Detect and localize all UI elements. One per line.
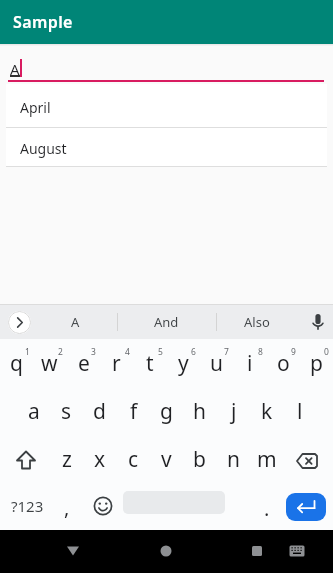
button[interactable] xyxy=(285,439,329,483)
button[interactable] xyxy=(8,311,31,334)
button[interactable]: August xyxy=(6,128,327,167)
staticText: f xyxy=(130,397,138,426)
staticText: Sample xyxy=(13,11,73,33)
staticText: m xyxy=(257,445,277,474)
staticText: 5 xyxy=(158,346,163,358)
button[interactable] xyxy=(146,531,186,571)
staticText: a xyxy=(28,397,40,426)
button[interactable]: And xyxy=(126,307,206,337)
button[interactable]: y xyxy=(167,341,200,385)
staticText: 2 xyxy=(58,346,63,358)
staticText: u xyxy=(210,349,223,378)
button[interactable]: b xyxy=(183,437,216,481)
staticText: d xyxy=(93,397,106,426)
button[interactable]: Also xyxy=(222,307,292,337)
staticText: n xyxy=(227,445,240,474)
staticText: 8 xyxy=(258,346,263,358)
button[interactable]: j xyxy=(217,389,250,433)
staticText: k xyxy=(261,397,273,426)
button[interactable]: l xyxy=(283,389,316,433)
staticText: r xyxy=(112,349,121,378)
button[interactable]: x xyxy=(83,437,116,481)
staticText: z xyxy=(62,445,72,474)
staticText: , xyxy=(64,494,70,521)
staticText: August xyxy=(20,139,67,158)
button[interactable]: s xyxy=(50,389,83,433)
staticText: 1 xyxy=(25,346,30,358)
button[interactable]: Sample xyxy=(0,0,333,44)
button[interactable]: e xyxy=(67,341,100,385)
button[interactable] xyxy=(280,531,314,571)
button[interactable]: v xyxy=(150,437,183,481)
staticText: A xyxy=(10,59,20,79)
staticText: h xyxy=(193,397,206,426)
button[interactable] xyxy=(4,438,48,482)
button[interactable]: A xyxy=(40,307,110,337)
button[interactable]: n xyxy=(217,437,250,481)
staticText: b xyxy=(193,445,206,474)
staticText: l xyxy=(297,397,303,426)
staticText: 3 xyxy=(91,346,96,358)
staticText: w xyxy=(41,349,58,378)
staticText: j xyxy=(231,397,237,426)
button[interactable] xyxy=(83,486,123,526)
staticText: ?123 xyxy=(11,496,44,516)
staticText: . xyxy=(264,495,270,522)
staticText: i xyxy=(247,349,253,378)
button[interactable]: u xyxy=(200,341,233,385)
button[interactable]: o xyxy=(267,341,300,385)
staticText: x xyxy=(94,445,106,474)
button[interactable]: z xyxy=(50,437,83,481)
button[interactable] xyxy=(305,307,331,337)
button[interactable]: a xyxy=(17,389,50,433)
staticText: 6 xyxy=(191,346,196,358)
button[interactable]: t xyxy=(133,341,166,385)
button[interactable]: ?123 xyxy=(3,486,51,526)
staticText: 9 xyxy=(291,346,296,358)
button[interactable]: h xyxy=(183,389,216,433)
staticText: e xyxy=(78,349,90,378)
staticText: g xyxy=(160,397,173,426)
button[interactable]: q xyxy=(0,341,33,385)
button[interactable] xyxy=(286,493,326,521)
staticText: 7 xyxy=(224,346,229,358)
button[interactable]: i xyxy=(233,341,266,385)
button[interactable]: , xyxy=(50,485,83,529)
staticText: Also xyxy=(244,313,270,331)
staticText: A xyxy=(71,313,80,331)
staticText: c xyxy=(128,445,139,474)
button[interactable]: r xyxy=(100,341,133,385)
button[interactable]: g xyxy=(150,389,183,433)
button[interactable] xyxy=(53,531,93,571)
staticText: 4 xyxy=(125,346,130,358)
button[interactable]: . xyxy=(250,486,283,530)
staticText: q xyxy=(10,349,23,378)
button[interactable]: w xyxy=(33,341,66,385)
button[interactable]: k xyxy=(250,389,283,433)
button[interactable]: m xyxy=(250,437,283,481)
button[interactable] xyxy=(237,531,277,571)
staticText: v xyxy=(161,445,172,474)
staticText: And xyxy=(154,313,179,331)
staticText: s xyxy=(61,397,72,426)
button[interactable]: d xyxy=(83,389,116,433)
staticText: o xyxy=(277,349,290,378)
button[interactable]: c xyxy=(117,437,150,481)
button[interactable]: p xyxy=(300,341,333,385)
staticText: April xyxy=(20,98,51,117)
button[interactable]: f xyxy=(117,389,150,433)
staticText: 0 xyxy=(324,346,329,358)
staticText: t xyxy=(146,349,154,378)
staticText: y xyxy=(178,349,189,378)
button[interactable]: April xyxy=(6,84,327,127)
staticText: p xyxy=(310,349,323,378)
